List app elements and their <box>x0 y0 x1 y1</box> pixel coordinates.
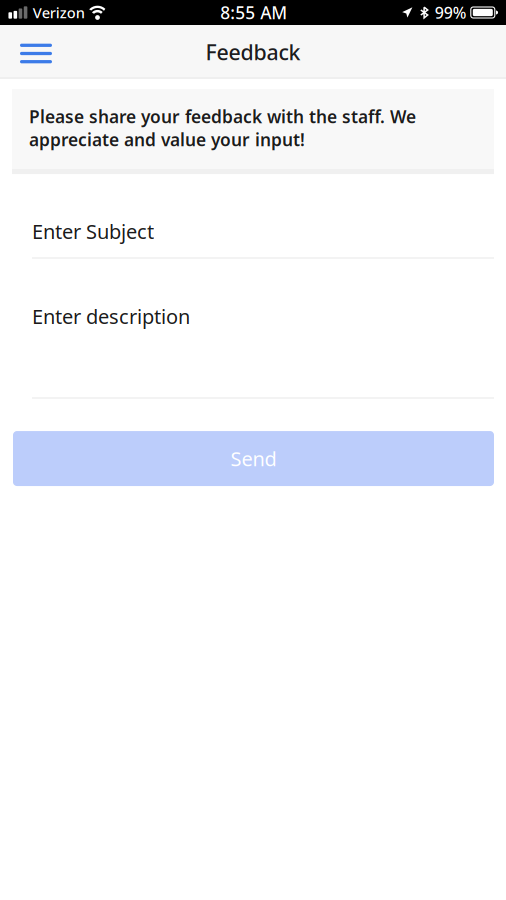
staticText: 99% <box>435 2 467 23</box>
staticText: Enter Subject <box>32 218 154 245</box>
staticText: 8:55 AM <box>220 1 287 24</box>
staticText: Feedback <box>205 38 300 66</box>
button[interactable]: Enter description <box>32 259 494 399</box>
staticText: Send <box>230 445 276 472</box>
staticText: Enter description <box>32 303 190 330</box>
button[interactable]: Menu <box>8 25 64 78</box>
button[interactable]: Enter Subject <box>32 174 494 259</box>
staticText: Verizon <box>33 3 85 22</box>
staticText: Please share your feedback with the staf… <box>29 105 416 128</box>
staticText: appreciate and value your input! <box>29 128 305 151</box>
button[interactable]: Send <box>13 431 494 486</box>
